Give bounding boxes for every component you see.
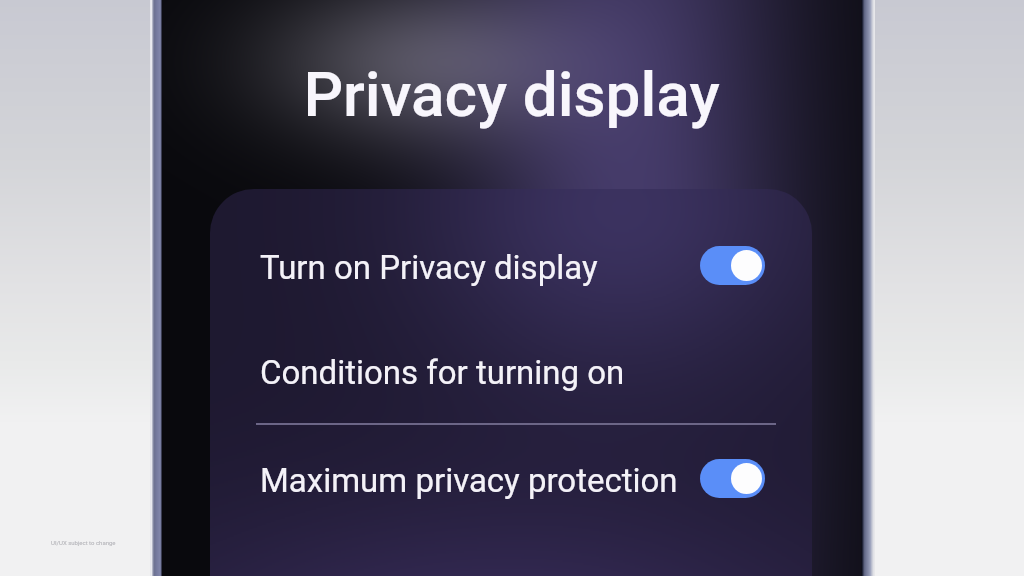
staticText: Conditions for turning on <box>260 353 625 392</box>
staticText: Privacy display <box>162 58 861 131</box>
button[interactable]: Toggle setting <box>700 459 765 498</box>
button[interactable]: Toggle setting <box>700 246 765 285</box>
button[interactable]: Turn on Privacy display <box>210 214 812 320</box>
staticText: Maximum privacy protection <box>260 461 678 500</box>
button[interactable]: Maximum privacy protection <box>210 427 812 533</box>
staticText: Turn on Privacy display <box>260 248 598 287</box>
staticText: UI/UX subject to change <box>51 539 116 546</box>
button[interactable]: Conditions for turning on <box>210 319 812 425</box>
